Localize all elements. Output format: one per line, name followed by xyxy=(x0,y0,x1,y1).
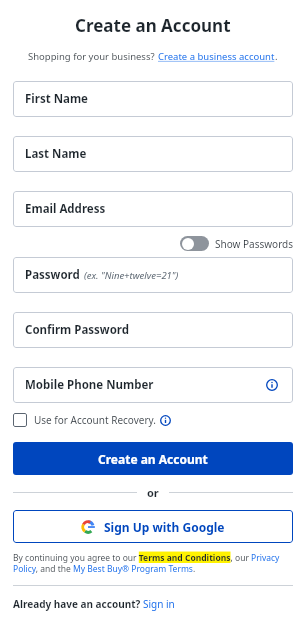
staticText: or xyxy=(147,485,159,500)
button[interactable]: Sign Up with Google xyxy=(13,510,293,543)
staticText: Show Passwords xyxy=(215,237,293,251)
button[interactable]: Email Address xyxy=(13,191,293,227)
button[interactable]: Password xyxy=(13,257,293,293)
staticText: By continuing you agree to our Terms and… xyxy=(13,552,293,574)
staticText: . xyxy=(275,50,278,63)
staticText: Create an Account xyxy=(98,451,208,467)
staticText: Use for Account Recovery. xyxy=(34,413,156,427)
staticText: Create an Account xyxy=(75,14,231,37)
button[interactable]: First Name xyxy=(13,81,293,117)
button[interactable]: More information xyxy=(263,376,281,394)
button[interactable]: Confirm Password xyxy=(13,312,293,348)
staticText: Create a business account xyxy=(158,50,275,63)
staticText: Confirm Password xyxy=(25,322,130,338)
staticText: Last Name xyxy=(25,146,87,162)
staticText: Shopping for your business? xyxy=(28,50,158,63)
staticText: Already have an account? xyxy=(13,597,143,611)
staticText: Password xyxy=(25,267,80,283)
button[interactable]: Use for Account Recovery. xyxy=(13,413,171,427)
staticText: Sign Up with Google xyxy=(104,519,225,535)
button[interactable]: Mobile Phone Number xyxy=(13,367,293,403)
button[interactable]: Last Name xyxy=(13,136,293,172)
button[interactable]: Show Passwords xyxy=(180,236,293,251)
staticText: Email Address xyxy=(25,201,106,217)
staticText: Mobile Phone Number xyxy=(25,377,154,393)
staticText: Sign in xyxy=(143,597,175,611)
staticText: (ex. "Nine+twelve=21") xyxy=(84,269,179,282)
button[interactable]: Create an Account xyxy=(13,442,293,475)
button[interactable]: Sign in xyxy=(143,597,175,611)
button[interactable]: Create a business account xyxy=(158,50,275,63)
staticText: First Name xyxy=(25,91,88,107)
